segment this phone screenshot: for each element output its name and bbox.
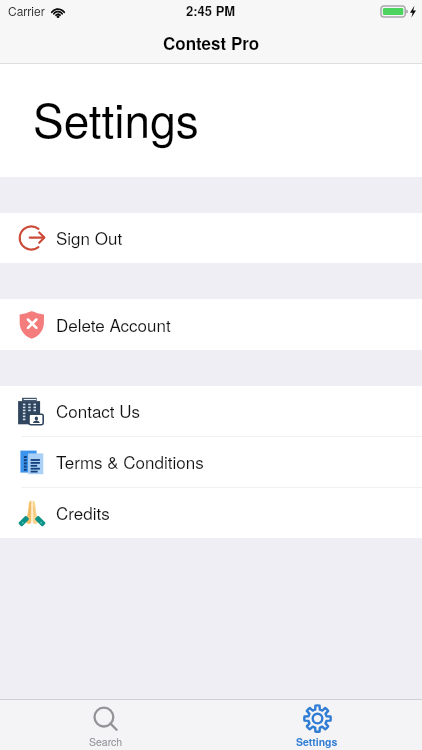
- button[interactable]: Credits: [0, 488, 422, 538]
- staticText: Contest Pro: [163, 31, 260, 55]
- staticText: Settings: [33, 85, 199, 151]
- staticText: Credits: [56, 500, 110, 524]
- staticText: Contact Us: [56, 398, 141, 422]
- button[interactable]: Search: [0, 700, 211, 750]
- staticText: Delete Account: [56, 312, 171, 336]
- staticText: Terms & Conditions: [56, 449, 204, 473]
- button[interactable]: Sign Out: [0, 213, 422, 263]
- staticText: Carrier: [8, 2, 45, 19]
- staticText: Search: [89, 734, 123, 749]
- button[interactable]: Contact Us: [0, 386, 422, 436]
- staticText: Sign Out: [56, 225, 123, 249]
- staticText: 2:45 PM: [186, 1, 236, 20]
- button[interactable]: Terms & Conditions: [0, 437, 422, 487]
- button[interactable]: Delete Account: [0, 299, 422, 350]
- button[interactable]: Settings: [211, 700, 422, 750]
- staticText: Settings: [296, 734, 338, 749]
